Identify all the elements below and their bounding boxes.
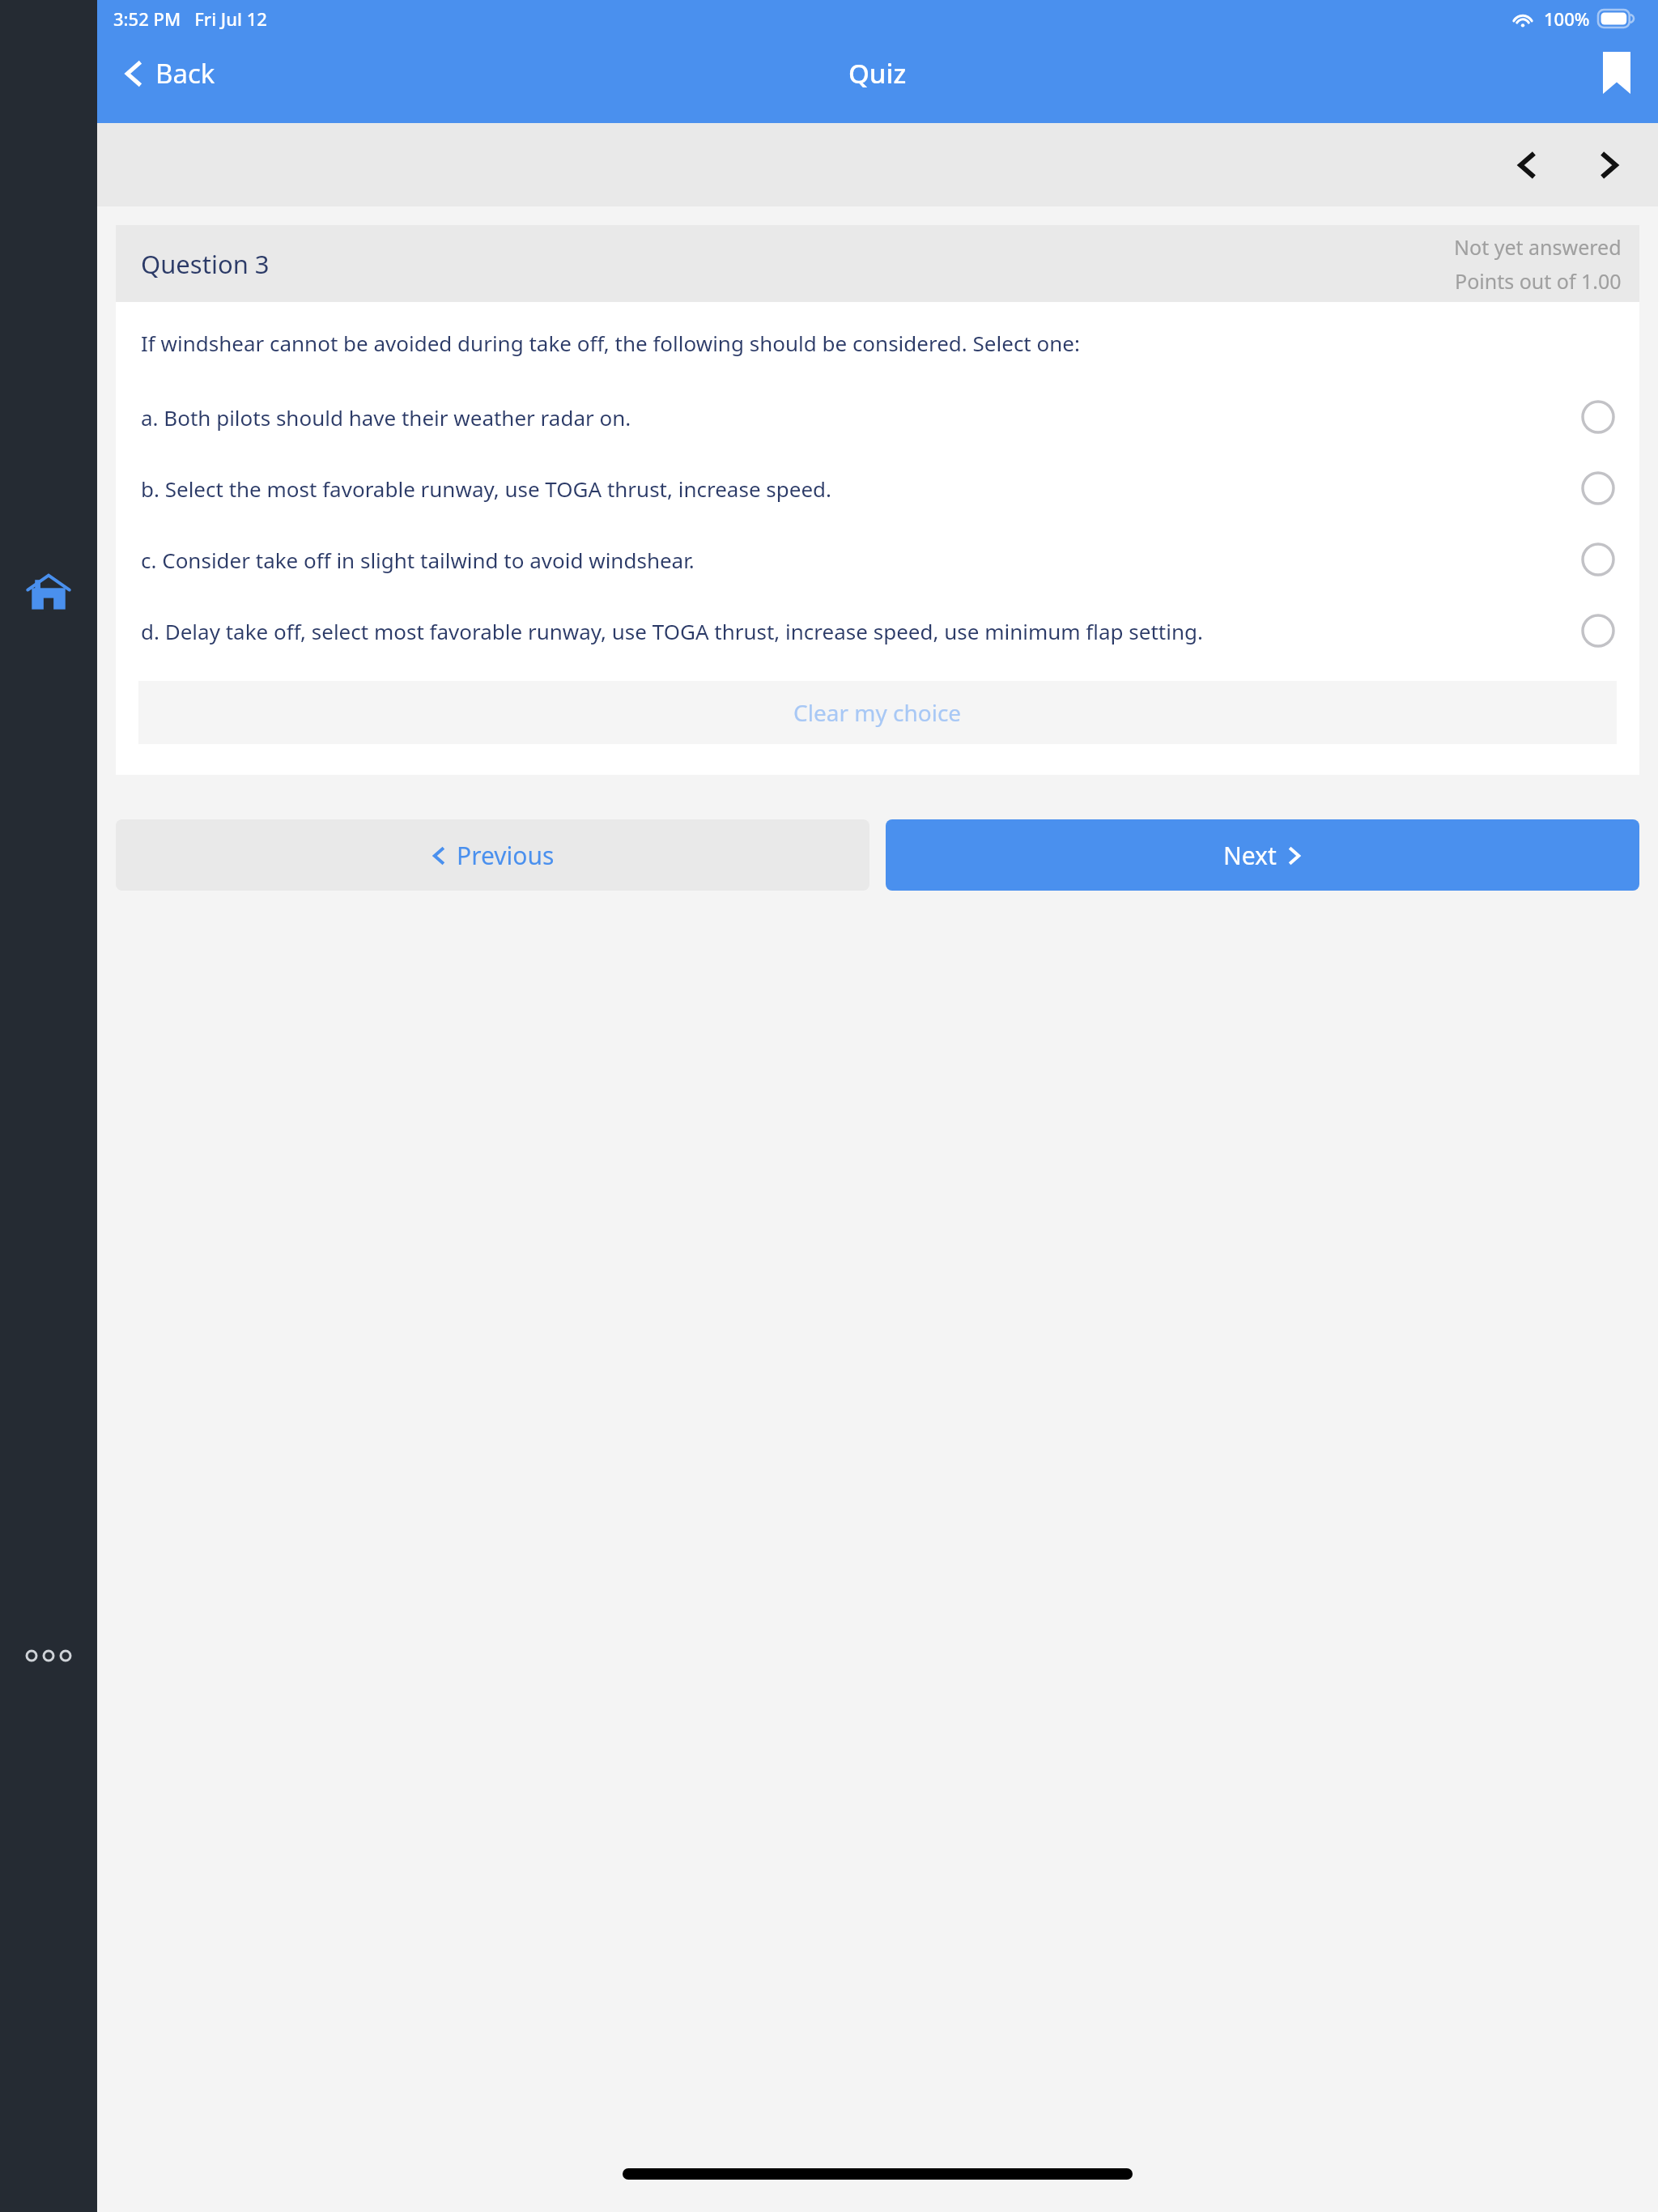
staticText: Question 3 [141,247,270,281]
staticText: If windshear cannot be avoided during ta… [141,329,1080,357]
staticText: Back [155,55,215,91]
staticText: Previous [457,839,555,872]
button[interactable]: c. Consider take off in slight tailwind … [116,524,1639,595]
button[interactable]: Next question [1579,134,1640,196]
staticText: a. Both pilots should have their weather… [141,403,1581,432]
staticText: Next [1223,839,1277,872]
staticText: 3:52 PM Fri Jul 12 [113,6,267,31]
staticText: Clear my choice [793,697,962,728]
button[interactable]: More options [0,1631,97,1680]
button[interactable]: Bookmark [1592,40,1642,105]
staticText: 100% [1544,6,1590,31]
staticText: b. Select the most favorable runway, use… [141,474,1581,503]
staticText: Quiz [848,55,907,91]
staticText: d. Delay take off, select most favorable… [141,617,1581,645]
button[interactable]: b. Select the most favorable runway, use… [116,453,1639,524]
button[interactable]: a. Both pilots should have their weather… [116,381,1639,453]
button[interactable]: Home [0,557,97,630]
button[interactable]: Clear my choice [138,681,1617,744]
button[interactable]: d. Delay take off, select most favorable… [116,595,1639,666]
button[interactable]: Previous [116,819,869,891]
staticText: c. Consider take off in slight tailwind … [141,546,1581,574]
staticText: Points out of 1.00 [1455,267,1622,295]
button[interactable]: Back [110,45,227,101]
button[interactable]: Next [886,819,1639,891]
staticText: Not yet answered [1454,233,1622,261]
button[interactable]: Previous question [1496,134,1558,196]
